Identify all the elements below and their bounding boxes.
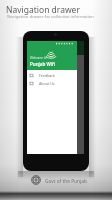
other: Government emblem — [31, 175, 41, 185]
staticText: Feedback — [39, 73, 55, 78]
staticText: Punjab Wifi — [30, 61, 55, 67]
staticText: Navigation drawer for collective informa… — [7, 14, 94, 20]
staticText: Govt of the Punjab — [45, 178, 87, 185]
staticText: Navigation drawer — [6, 4, 80, 16]
staticText: Welcome to — [30, 56, 47, 60]
staticText: About Us — [39, 81, 55, 86]
button[interactable]: Feedback — [27, 71, 77, 79]
button[interactable]: About Us — [27, 79, 77, 87]
